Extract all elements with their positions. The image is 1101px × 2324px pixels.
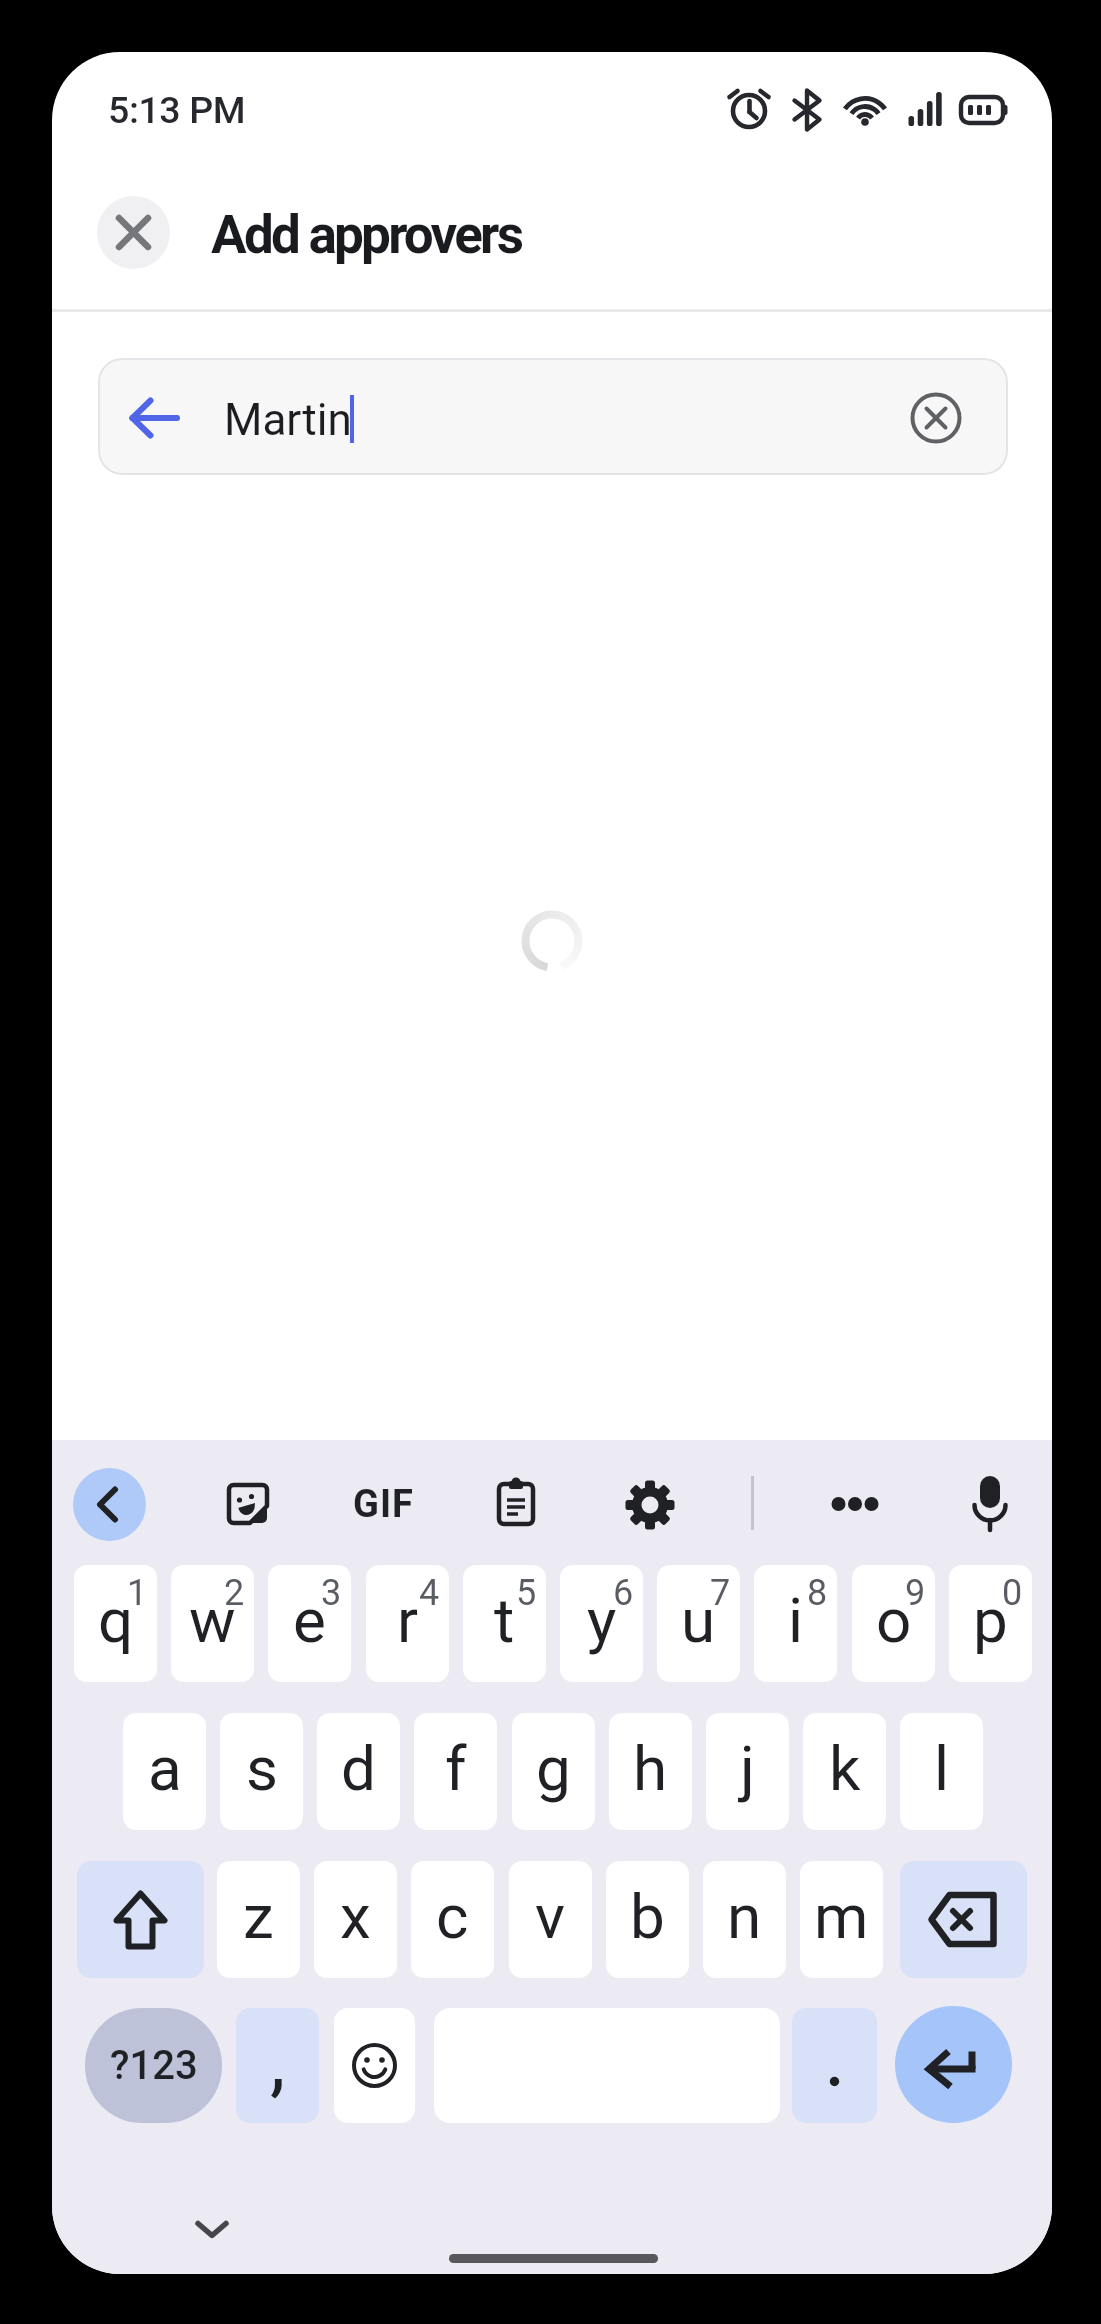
button[interactable]: i bbox=[754, 1565, 837, 1682]
staticText: 2 bbox=[224, 1572, 245, 1614]
button[interactable] bbox=[908, 390, 964, 446]
button[interactable]: v bbox=[509, 1861, 592, 1978]
button[interactable]: c bbox=[411, 1861, 494, 1978]
button[interactable]: GIF bbox=[338, 1479, 428, 1529]
button[interactable]: j bbox=[706, 1713, 789, 1830]
staticText: m bbox=[814, 1880, 869, 1953]
button[interactable] bbox=[622, 1477, 678, 1533]
button[interactable]: w bbox=[171, 1565, 254, 1682]
staticText: 6 bbox=[613, 1572, 634, 1614]
staticText: 5:13 PM bbox=[108, 88, 246, 132]
button[interactable] bbox=[334, 2008, 415, 2123]
button[interactable]: q bbox=[74, 1565, 157, 1682]
staticText: 3 bbox=[321, 1572, 342, 1614]
button[interactable]: b bbox=[606, 1861, 689, 1978]
staticText: g bbox=[536, 1732, 571, 1805]
button[interactable]: ?123 bbox=[85, 2008, 222, 2123]
button[interactable]: y bbox=[560, 1565, 643, 1682]
button[interactable]: e bbox=[268, 1565, 351, 1682]
button[interactable] bbox=[97, 196, 170, 269]
staticText: i bbox=[788, 1584, 804, 1657]
staticText: GIF bbox=[353, 1482, 414, 1527]
button[interactable] bbox=[900, 1861, 1027, 1978]
staticText: 7 bbox=[710, 1572, 731, 1614]
staticText: 9 bbox=[905, 1572, 926, 1614]
staticText: 8 bbox=[807, 1572, 828, 1614]
button[interactable] bbox=[962, 1474, 1018, 1534]
button[interactable] bbox=[188, 2213, 236, 2245]
button[interactable]: d bbox=[317, 1713, 400, 1830]
button[interactable]: , bbox=[236, 2008, 319, 2123]
button[interactable]: x bbox=[314, 1861, 397, 1978]
staticText: p bbox=[973, 1584, 1008, 1657]
button[interactable]: o bbox=[852, 1565, 935, 1682]
staticText: s bbox=[246, 1732, 278, 1805]
button[interactable]: s bbox=[220, 1713, 303, 1830]
staticText: a bbox=[148, 1732, 182, 1805]
button[interactable] bbox=[220, 1476, 276, 1532]
button[interactable]: r bbox=[366, 1565, 449, 1682]
button[interactable]: h bbox=[609, 1713, 692, 1830]
button[interactable] bbox=[895, 2006, 1012, 2123]
button[interactable]: n bbox=[703, 1861, 786, 1978]
button[interactable]: u bbox=[657, 1565, 740, 1682]
button[interactable]: k bbox=[803, 1713, 886, 1830]
staticText: j bbox=[740, 1732, 755, 1805]
staticText: l bbox=[934, 1732, 950, 1805]
button[interactable] bbox=[73, 1468, 146, 1541]
staticText: c bbox=[436, 1880, 469, 1953]
staticText: f bbox=[445, 1732, 467, 1805]
staticText: ?123 bbox=[110, 2042, 198, 2089]
button[interactable]: a bbox=[123, 1713, 206, 1830]
button[interactable] bbox=[488, 1476, 544, 1532]
button[interactable]: t bbox=[463, 1565, 546, 1682]
button[interactable]: l bbox=[900, 1713, 983, 1830]
staticText: , bbox=[270, 2015, 286, 2106]
staticText: w bbox=[189, 1584, 236, 1657]
staticText: t bbox=[494, 1584, 515, 1657]
staticText: o bbox=[876, 1584, 912, 1657]
button[interactable] bbox=[127, 390, 183, 446]
staticText: d bbox=[341, 1732, 376, 1805]
staticText: v bbox=[535, 1880, 566, 1953]
staticText: 0 bbox=[1002, 1572, 1023, 1614]
staticText: z bbox=[243, 1880, 274, 1953]
button[interactable]: p bbox=[949, 1565, 1032, 1682]
button[interactable] bbox=[77, 1861, 204, 1978]
staticText: n bbox=[727, 1880, 762, 1953]
button[interactable] bbox=[819, 1484, 891, 1524]
button[interactable]: z bbox=[217, 1861, 300, 1978]
button[interactable]: f bbox=[414, 1713, 497, 1830]
staticText: k bbox=[829, 1732, 861, 1805]
staticText: 5 bbox=[516, 1572, 537, 1614]
staticText: Add approvers bbox=[211, 204, 522, 266]
button[interactable] bbox=[792, 2008, 877, 2123]
staticText: Martin bbox=[224, 394, 352, 446]
staticText: u bbox=[681, 1584, 716, 1657]
staticText: e bbox=[293, 1584, 326, 1657]
staticText: x bbox=[340, 1880, 371, 1953]
staticText: b bbox=[630, 1880, 665, 1953]
staticText: r bbox=[397, 1584, 419, 1657]
button[interactable]: g bbox=[512, 1713, 595, 1830]
staticText: 4 bbox=[419, 1572, 440, 1614]
staticText: 1 bbox=[127, 1572, 148, 1614]
staticText: y bbox=[587, 1584, 617, 1657]
staticText: h bbox=[633, 1732, 668, 1805]
button[interactable] bbox=[98, 358, 1008, 475]
staticText: q bbox=[98, 1584, 134, 1657]
button[interactable]: m bbox=[800, 1861, 883, 1978]
